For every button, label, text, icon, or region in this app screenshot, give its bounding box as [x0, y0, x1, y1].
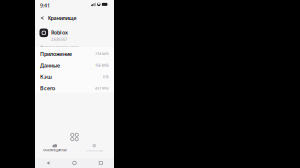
- staticText: Использование места: [40, 44, 79, 49]
- button[interactable]: Хранилище: [47, 12, 76, 23]
- button[interactable]: Back: [35, 158, 61, 168]
- button[interactable]: Recents: [88, 158, 114, 168]
- staticText: Приложение: [40, 50, 72, 57]
- staticText: Хранилище: [47, 14, 76, 22]
- staticText: 9:41: [40, 2, 50, 9]
- staticText: Roblox: [51, 29, 68, 36]
- staticText: Всего: [40, 85, 55, 92]
- staticText: 2.639.557: [51, 36, 67, 42]
- staticText: Данные: [40, 62, 60, 69]
- staticText: Кэш: [40, 73, 52, 80]
- button[interactable]: Данные: [35, 58, 114, 70]
- button[interactable]: Очистить данные: [35, 141, 74, 155]
- button[interactable]: Back: [38, 12, 46, 23]
- button[interactable]: Кэш: [35, 70, 114, 81]
- button[interactable]: Очистить кэш: [74, 141, 114, 155]
- staticText: 0 B: [103, 74, 109, 79]
- staticText: 274 MB: [95, 51, 109, 56]
- staticText: 431 MB: [95, 85, 109, 91]
- button[interactable]: Home: [61, 158, 88, 168]
- button[interactable]: Приложение: [35, 47, 114, 58]
- staticText: 156 MB: [95, 63, 109, 68]
- staticText: Очистить кэш: [86, 149, 103, 152]
- staticText: Очистить данные: [43, 148, 66, 152]
- button[interactable]: Всего: [35, 81, 114, 93]
